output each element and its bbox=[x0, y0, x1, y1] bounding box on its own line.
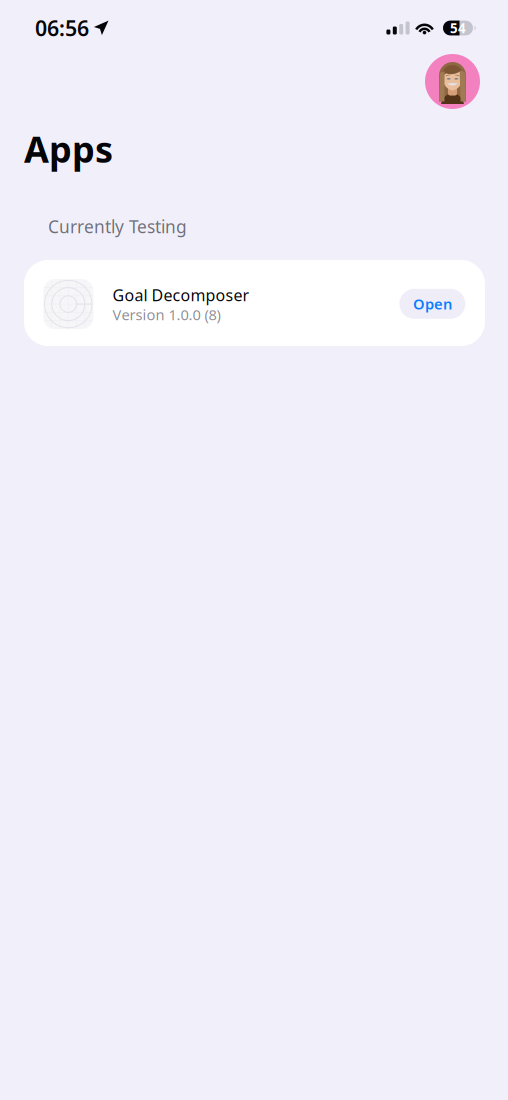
button[interactable]: Account bbox=[425, 54, 480, 109]
staticText: Goal Decomposer bbox=[112, 284, 249, 306]
button[interactable]: Goal Decomposer bbox=[24, 260, 485, 346]
staticText: Apps bbox=[24, 125, 113, 173]
button[interactable]: Open bbox=[399, 289, 465, 319]
staticText: 54 bbox=[450, 19, 466, 37]
staticText: 06:56 bbox=[35, 14, 89, 42]
staticText: Version 1.0.0 (8) bbox=[112, 305, 220, 324]
staticText: Currently Testing bbox=[48, 215, 187, 238]
staticText: Open bbox=[413, 294, 452, 314]
